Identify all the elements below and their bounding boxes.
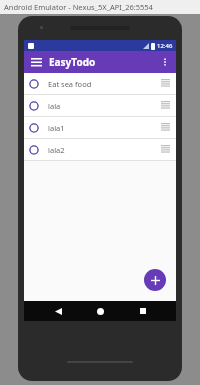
button[interactable]: Home <box>91 302 109 320</box>
button[interactable]: lala2 <box>24 139 176 160</box>
button[interactable]: lala <box>24 95 176 116</box>
staticText: lala1 <box>48 123 161 133</box>
button[interactable]: Back <box>49 302 67 320</box>
staticText: 12:46 <box>157 42 173 50</box>
staticText: Eat sea food <box>48 79 161 89</box>
other: Reorder lala <box>161 101 170 110</box>
staticText: EasyTodo <box>49 55 96 69</box>
other: Reorder lala2 <box>161 145 170 154</box>
button[interactable]: Open navigation drawer <box>27 53 45 71</box>
staticText: lala2 <box>48 145 161 155</box>
other: Reorder lala1 <box>161 123 170 132</box>
button[interactable]: Add todo <box>144 269 166 291</box>
button[interactable]: Recent apps <box>134 302 152 320</box>
other: Reorder Eat sea food <box>161 79 170 88</box>
button[interactable]: lala1 <box>24 117 176 138</box>
staticText: lala <box>48 101 161 111</box>
button[interactable]: Eat sea food <box>24 73 176 94</box>
staticText: Android Emulator - Nexus_5X_API_26:5554 <box>4 2 153 12</box>
button[interactable]: More options <box>156 53 174 71</box>
